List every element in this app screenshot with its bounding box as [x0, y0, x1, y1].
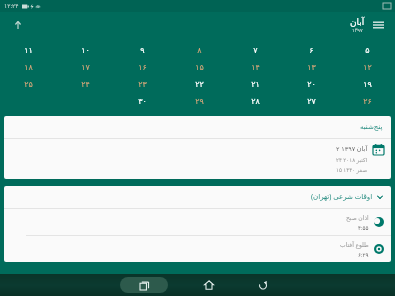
staticText: ۹	[140, 46, 145, 55]
staticText: ۱۲	[363, 63, 372, 72]
button[interactable]: ۱۵	[171, 59, 227, 76]
staticText: طلوع آفتاب	[340, 241, 369, 249]
staticText: ۱۱	[24, 46, 33, 55]
button[interactable]: ۲۹	[171, 93, 227, 110]
staticText: ۱۲:۲۴	[4, 2, 19, 10]
staticText: ۱۰	[81, 46, 90, 55]
button[interactable]: ۲۲	[171, 76, 227, 93]
button[interactable]: ۱۳	[283, 59, 339, 76]
button[interactable]: طلوع آفتاب	[4, 236, 391, 262]
button[interactable]: ۲۴	[57, 76, 114, 93]
button[interactable]: ۱۹	[339, 76, 395, 93]
button[interactable]: ۱۶	[114, 59, 171, 76]
button[interactable]: Home	[196, 276, 222, 294]
staticText: ۲۵	[24, 80, 33, 89]
staticText: ۲۱	[251, 80, 260, 89]
staticText: ۲۰	[307, 80, 316, 89]
staticText: ۶:۲۹	[358, 251, 369, 258]
button[interactable]: ۱۸	[0, 59, 57, 76]
button[interactable]: ۱۷	[57, 59, 114, 76]
staticText: ۲۴ اکتبر ۲۰۱۸	[336, 156, 368, 163]
staticText: ۱۷	[81, 63, 90, 72]
staticText: ۱۳۹۷	[352, 27, 363, 33]
staticText: ۱۳	[307, 63, 316, 72]
button[interactable]: ۲۰	[283, 76, 339, 93]
staticText: ۲۶	[363, 97, 372, 106]
button[interactable]: پنج‌شنبه	[4, 116, 391, 179]
staticText: ۳۰	[138, 97, 147, 106]
button[interactable]: Recents	[120, 277, 168, 293]
button[interactable]: Back	[250, 276, 276, 294]
staticText: ۲۴	[81, 80, 90, 89]
staticText: پنج‌شنبه	[360, 123, 383, 131]
button[interactable]: اذان صبح	[4, 209, 391, 235]
button[interactable]: ۱۴	[227, 59, 283, 76]
button[interactable]: ۸	[171, 42, 227, 59]
button[interactable]: ۲۷	[283, 93, 339, 110]
button[interactable]: ۵	[339, 42, 395, 59]
staticText: ۱۶	[138, 63, 147, 72]
button[interactable]: ۱۱	[0, 42, 57, 59]
staticText: آبان	[350, 17, 365, 27]
staticText: ۲۲	[195, 80, 204, 89]
button[interactable]: ۱۰	[57, 42, 114, 59]
staticText: ۲۳	[138, 80, 147, 89]
staticText: ۱۵	[195, 63, 204, 72]
button[interactable]: اوقات شرعی (تهران)	[4, 186, 391, 208]
button[interactable]: ۷	[227, 42, 283, 59]
button[interactable]: ۲۳	[114, 76, 171, 93]
staticText: ۱۹	[363, 80, 372, 89]
staticText: ۲۸	[251, 97, 260, 106]
staticText: ۸	[197, 46, 202, 55]
staticText: ۲ آبان ۱۳۹۷	[336, 144, 368, 153]
staticText: ۲۷	[307, 97, 316, 106]
staticText: ۶	[309, 46, 314, 55]
button[interactable]: ۱۲	[339, 59, 395, 76]
staticText: ۱۴	[251, 63, 260, 72]
button[interactable]: ۲۸	[227, 93, 283, 110]
staticText: ۱۸	[24, 63, 33, 72]
staticText: ۷	[253, 46, 258, 55]
button[interactable]: Collapse	[8, 15, 28, 35]
button[interactable]: Menu	[368, 15, 388, 35]
button[interactable]: ۲۵	[0, 76, 57, 93]
staticText: اذان صبح	[346, 214, 369, 222]
button[interactable]: ۲۱	[227, 76, 283, 93]
staticText: ۱۵ صفر ۱۴۴۰	[336, 166, 368, 173]
button[interactable]: ۶	[283, 42, 339, 59]
staticText: اوقات شرعی (تهران)	[311, 192, 373, 202]
staticText: ۲۹	[195, 97, 204, 106]
button[interactable]: ۹	[114, 42, 171, 59]
button[interactable]: ۳۰	[114, 93, 171, 110]
button[interactable]: ۲۶	[339, 93, 395, 110]
button[interactable]: آبان	[350, 17, 365, 33]
staticText: ۴:۵۵	[358, 224, 369, 231]
staticText: ۵	[365, 46, 370, 55]
